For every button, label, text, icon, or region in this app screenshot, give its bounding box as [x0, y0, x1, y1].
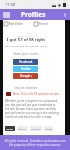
staticText: QUIZ RESULTS: [3, 34, 49, 37]
button[interactable]: QUIZZES: [30, 126, 42, 131]
button[interactable]: HOME: [5, 126, 15, 131]
button[interactable]: Menu: [3, 12, 10, 18]
staticText: links are elsewhere: [3, 86, 49, 90]
staticText: HOME: [6, 127, 14, 130]
staticText: Friend: [39, 22, 48, 26]
staticText: All rights reserved. Questions and answe…: [4, 139, 66, 147]
staticText: Profiles: [21, 10, 46, 19]
staticText: Whether you're a beginner or a seasoned …: [5, 99, 60, 119]
staticText: Take the quiz and see how well you do: [3, 44, 49, 47]
button[interactable]: ABOUT: [17, 126, 28, 131]
button[interactable]: Facebook: [13, 59, 38, 65]
button[interactable]: MORE: [44, 126, 53, 131]
staticText: 17:08: [5, 2, 16, 7]
button[interactable]: Google+: [13, 73, 38, 79]
staticText: Facebook: [19, 60, 33, 64]
staticText: Share your results: [3, 52, 49, 56]
button[interactable]: Account: [62, 12, 67, 17]
staticText: Note: This is the 58 question version: [13, 92, 59, 96]
staticText: MORE: [45, 127, 52, 130]
staticText: QUIZZES: [31, 127, 41, 130]
staticText: Red Velvet: [9, 22, 23, 26]
staticText: ABOUT: [18, 127, 27, 130]
button[interactable]: Twitter: [13, 66, 38, 72]
button[interactable]: Red Velvet: [3, 21, 24, 27]
staticText: Google+: [20, 74, 32, 78]
button[interactable]: Friend: [33, 21, 49, 27]
staticText: I got 57 of 58 right: [3, 37, 49, 43]
staticText: Twitter: [21, 67, 31, 71]
